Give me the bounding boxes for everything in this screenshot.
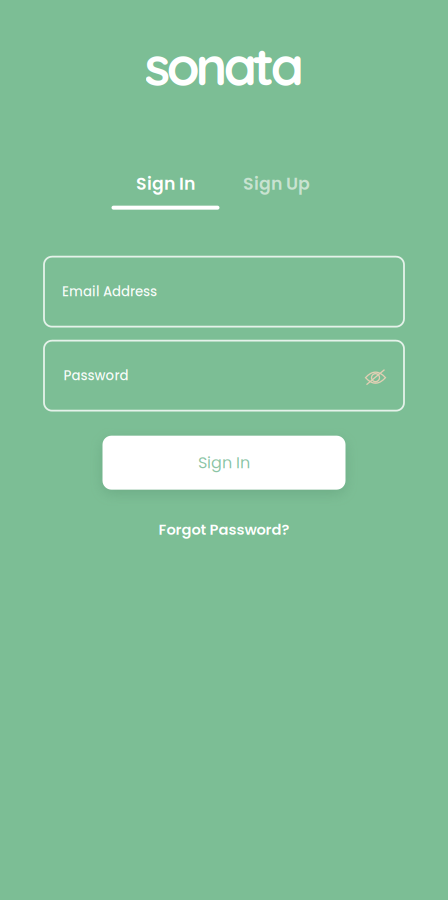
staticText: Sign In (136, 171, 195, 196)
staticText: Email Address (62, 282, 157, 301)
button[interactable]: Sign In (102, 436, 345, 490)
button[interactable]: Sign Up (221, 173, 331, 210)
staticText: Password (63, 366, 128, 385)
button[interactable]: Password (45, 341, 361, 411)
staticText: Sign Up (243, 171, 310, 196)
button[interactable]: Email Address (44, 257, 404, 327)
button[interactable]: Forgot Password? (158, 519, 289, 541)
staticText: sonata (144, 32, 303, 99)
button[interactable]: Sign In (110, 173, 220, 210)
staticText: Forgot Password? (158, 519, 289, 540)
button[interactable]: Show password (361, 341, 389, 411)
staticText: Sign In (198, 451, 250, 474)
